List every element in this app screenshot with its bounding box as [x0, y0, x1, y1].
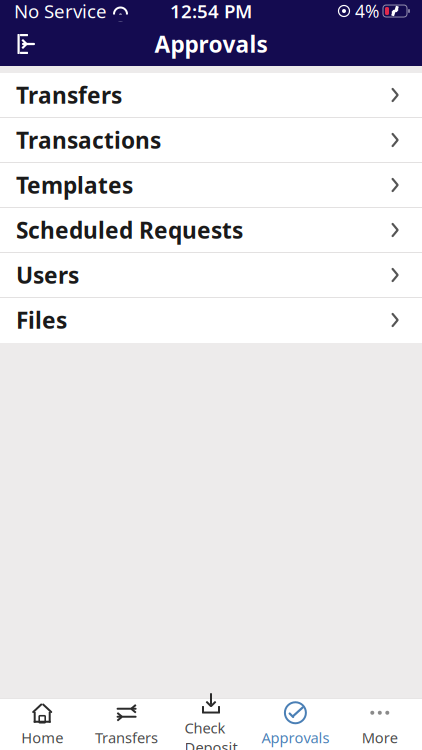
button[interactable]: Check Deposit [169, 699, 253, 749]
button[interactable]: Scheduled Requests [0, 208, 422, 253]
button[interactable]: Transfers [84, 699, 169, 749]
button[interactable]: Templates [0, 163, 422, 208]
button[interactable]: Users [0, 253, 422, 298]
staticText: 12:54 PM [170, 0, 252, 23]
staticText: Approvals [154, 29, 267, 59]
button[interactable]: More [338, 699, 422, 749]
button[interactable]: Approvals [253, 699, 338, 749]
staticText: No Service [14, 0, 107, 23]
staticText: Users [16, 260, 79, 290]
button[interactable]: Transfers [0, 73, 422, 118]
staticText: Approvals [261, 728, 329, 747]
staticText: Transactions [16, 125, 161, 155]
staticText: 4% [355, 0, 379, 22]
button[interactable]: Home [0, 699, 84, 749]
staticText: Home [21, 728, 63, 747]
staticText: Check Deposit [184, 718, 237, 750]
staticText: Transfers [16, 80, 122, 110]
staticText: Templates [16, 170, 133, 200]
staticText: Transfers [95, 728, 158, 747]
staticText: Scheduled Requests [16, 215, 243, 245]
button[interactable]: Transactions [0, 118, 422, 163]
staticText: Files [16, 305, 67, 335]
button[interactable]: Sign out [0, 22, 48, 66]
button[interactable]: Files [0, 298, 422, 343]
staticText: More [362, 728, 398, 747]
